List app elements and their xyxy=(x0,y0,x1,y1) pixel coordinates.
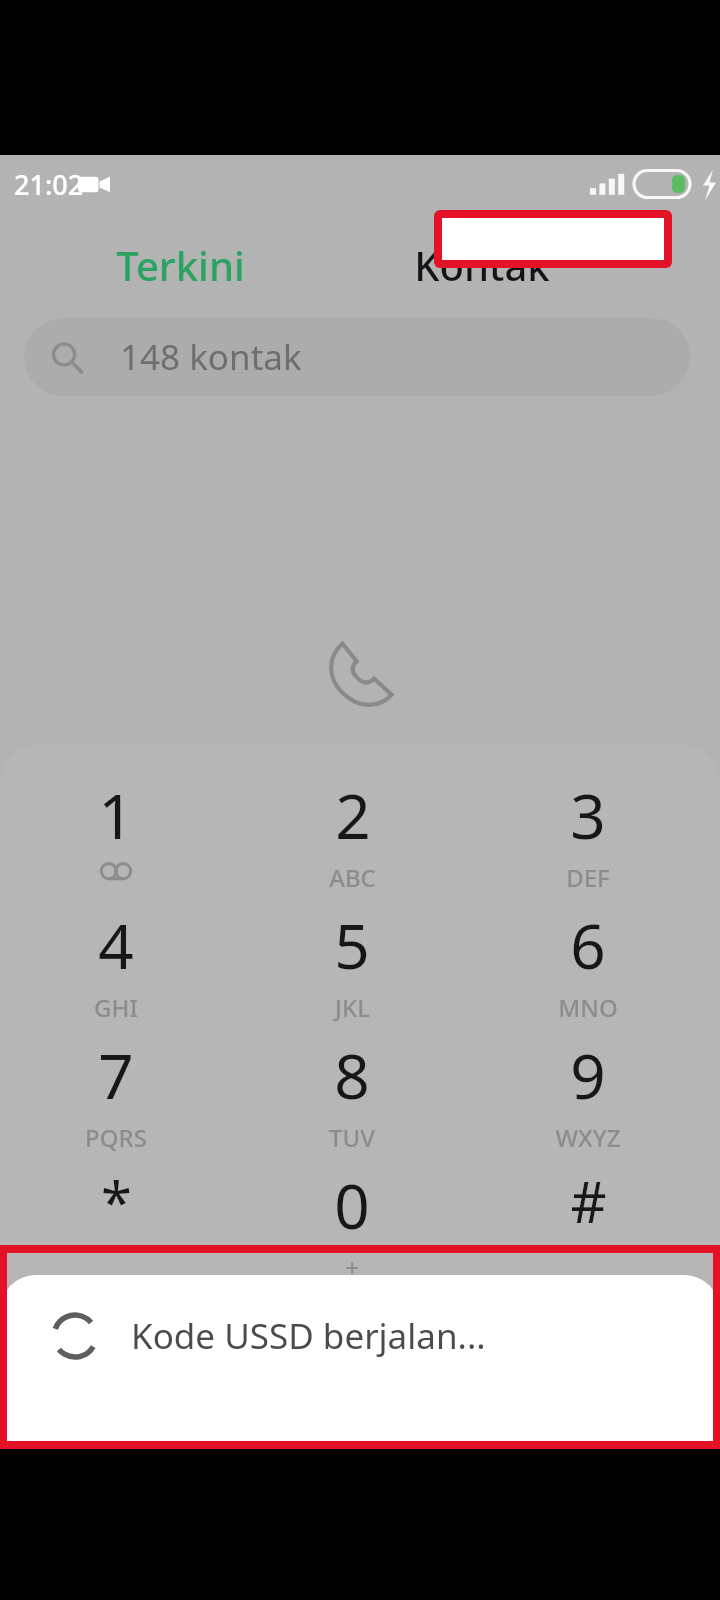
staticText: Terkini xyxy=(116,238,245,292)
staticText: 5 xyxy=(334,903,370,987)
button[interactable]: 8 xyxy=(266,1033,438,1157)
staticText: 0 xyxy=(334,1163,370,1247)
other: Screen recording xyxy=(78,174,110,195)
staticText: 9 xyxy=(570,1033,606,1117)
button[interactable]: 7 xyxy=(30,1033,202,1157)
staticText: 3 xyxy=(570,773,606,857)
button[interactable]: 3 xyxy=(502,773,674,897)
staticText: 21:02 xyxy=(14,166,84,203)
button[interactable]: # xyxy=(502,1163,674,1287)
staticText: * xyxy=(101,1163,132,1239)
staticText: DEF xyxy=(566,861,610,894)
staticText: 2 xyxy=(335,773,371,857)
button[interactable]: Kontak xyxy=(360,230,720,300)
button[interactable]: 2 xyxy=(266,773,438,897)
staticText: Kontak xyxy=(414,238,550,292)
button[interactable]: Terkini xyxy=(0,230,360,300)
staticText: 6 xyxy=(570,903,606,987)
staticText: PQRS xyxy=(85,1121,147,1154)
button[interactable]: Loading xyxy=(0,1275,720,1448)
staticText: TUV xyxy=(329,1121,375,1154)
button[interactable]: 1 xyxy=(30,773,202,897)
staticText: # xyxy=(570,1163,607,1239)
button[interactable]: 148 kontak xyxy=(24,318,690,396)
button[interactable]: 4 xyxy=(30,903,202,1027)
other: Loading xyxy=(50,1311,100,1361)
staticText: JKL xyxy=(335,991,370,1024)
staticText: 8 xyxy=(334,1033,370,1117)
button[interactable]: 9 xyxy=(502,1033,674,1157)
staticText: 7 xyxy=(98,1033,134,1117)
staticText: GHI xyxy=(94,991,138,1024)
staticText: MNO xyxy=(558,991,618,1024)
button[interactable]: 5 xyxy=(266,903,438,1027)
staticText: ABC xyxy=(329,861,376,894)
staticText: + xyxy=(345,1251,359,1284)
staticText: 148 kontak xyxy=(120,333,302,381)
staticText: 1 xyxy=(98,773,134,857)
button[interactable]: 6 xyxy=(502,903,674,1027)
staticText: Kode USSD berjalan... xyxy=(131,1312,486,1360)
staticText: 4 xyxy=(98,903,134,987)
staticText: WXYZ xyxy=(555,1121,621,1154)
button[interactable]: 0 xyxy=(266,1163,438,1287)
button[interactable]: * xyxy=(30,1163,202,1287)
